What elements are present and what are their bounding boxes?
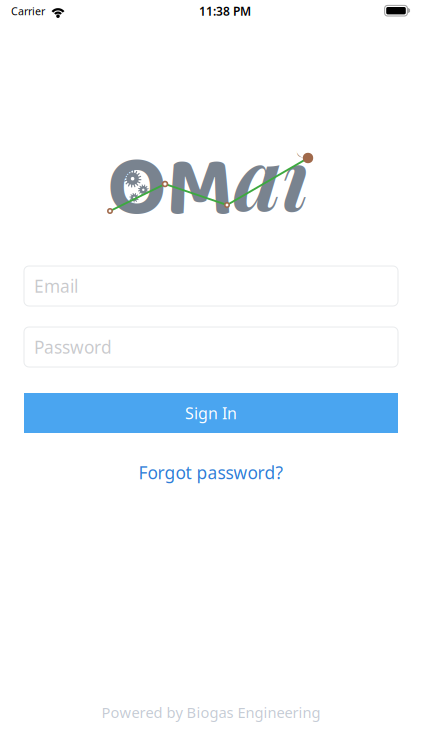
staticText: Powered by Biogas Engineering	[101, 702, 320, 722]
staticText: Sign In	[185, 402, 237, 424]
staticText: 11:38 PM	[199, 3, 251, 19]
button[interactable]: Forgot password?	[0, 461, 422, 484]
staticText: Forgot password?	[138, 461, 283, 484]
staticText: ai	[234, 119, 309, 233]
button[interactable]: Sign In	[24, 393, 398, 433]
staticText: Password	[34, 335, 112, 358]
staticText: OM	[107, 121, 234, 258]
staticText: Carrier	[11, 4, 45, 18]
staticText: Email	[34, 274, 78, 297]
